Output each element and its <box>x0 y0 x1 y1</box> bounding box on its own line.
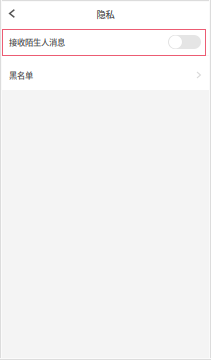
button[interactable]: 黑名单 <box>0 55 211 90</box>
button[interactable]: Back <box>2 2 22 28</box>
button[interactable]: 接收陌生人消息 <box>0 29 211 55</box>
staticText: 接收陌生人消息 <box>9 36 65 48</box>
staticText: 黑名单 <box>9 69 33 81</box>
staticText: 隐私 <box>96 7 114 21</box>
